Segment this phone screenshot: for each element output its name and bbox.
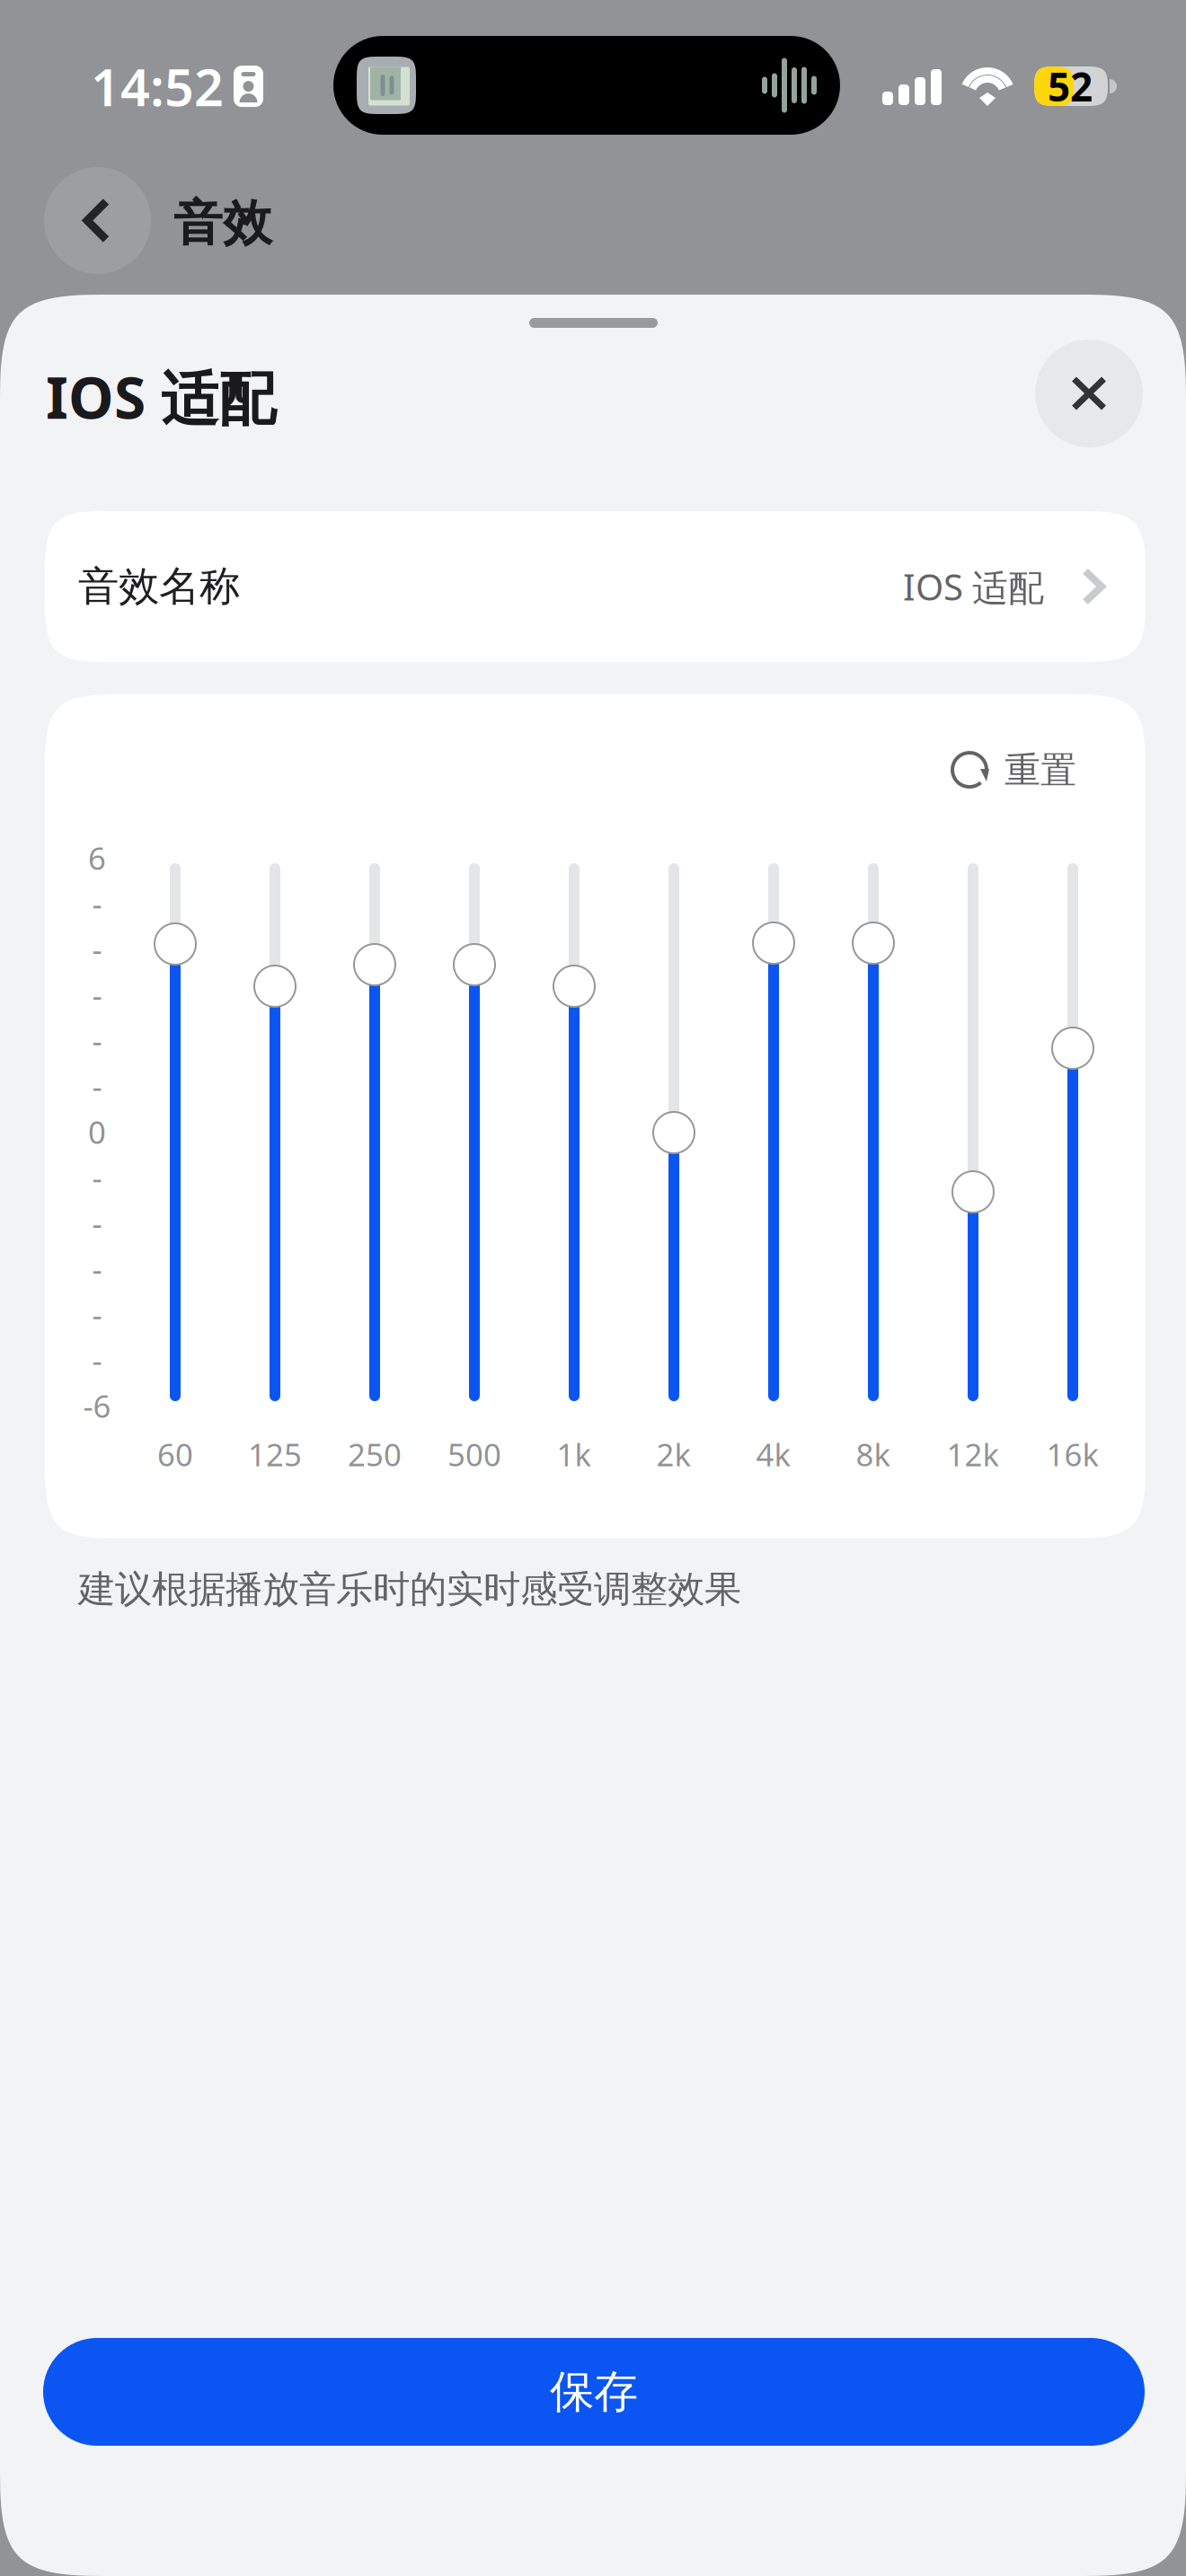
- button[interactable]: Close: [1035, 340, 1143, 447]
- staticText: -: [92, 1248, 102, 1289]
- button[interactable]: 音效名称: [45, 511, 1146, 662]
- staticText: -: [92, 1339, 102, 1381]
- staticText: 125: [248, 1434, 302, 1475]
- staticText: 2k: [656, 1434, 691, 1475]
- staticText: 4k: [756, 1434, 791, 1475]
- staticText: 6: [88, 837, 106, 878]
- staticText: 1k: [557, 1434, 592, 1475]
- staticText: -: [92, 928, 102, 970]
- staticText: 0: [88, 1111, 106, 1152]
- staticText: -: [92, 883, 102, 924]
- staticText: 16k: [1046, 1434, 1099, 1475]
- staticText: 8k: [856, 1434, 891, 1475]
- staticText: -: [92, 1020, 102, 1061]
- staticText: 音效: [173, 193, 272, 253]
- staticText: 保存: [550, 2365, 638, 2419]
- staticText: 音效名称: [78, 562, 240, 612]
- staticText: 12k: [947, 1434, 1000, 1475]
- staticText: 250: [348, 1434, 402, 1475]
- staticText: IOS 适配: [46, 358, 276, 435]
- staticText: 500: [447, 1434, 501, 1475]
- staticText: 52: [1048, 60, 1093, 112]
- staticText: -: [92, 1065, 102, 1107]
- staticText: -6: [83, 1385, 111, 1426]
- button[interactable]: Back: [44, 167, 151, 274]
- staticText: -: [92, 1157, 102, 1198]
- button[interactable]: 重置: [951, 748, 1076, 792]
- staticText: 14:52: [91, 52, 224, 120]
- staticText: IOS 适配: [903, 563, 1044, 610]
- staticText: 重置: [1005, 748, 1076, 792]
- staticText: 建议根据播放音乐时的实时感受调整效果: [78, 1566, 741, 1612]
- staticText: -: [92, 1202, 102, 1244]
- staticText: 60: [157, 1434, 193, 1475]
- button[interactable]: 保存: [43, 2338, 1145, 2446]
- staticText: -: [92, 974, 102, 1015]
- staticText: -: [92, 1294, 102, 1335]
